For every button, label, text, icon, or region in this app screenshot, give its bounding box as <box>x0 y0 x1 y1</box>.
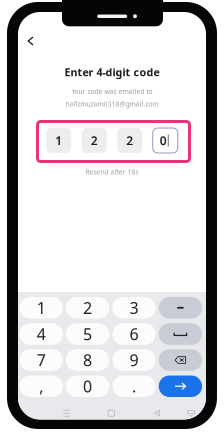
button[interactable]: Back <box>17 28 43 54</box>
button[interactable]: 6 <box>112 323 156 345</box>
button[interactable]: Space <box>159 323 202 345</box>
staticText: 5 <box>83 323 92 345</box>
button[interactable]: Hide keyboard <box>183 406 199 420</box>
button[interactable]: 2 <box>66 297 109 318</box>
button[interactable]: , <box>19 375 63 397</box>
button[interactable]: 7 <box>19 349 63 371</box>
staticText: 3 <box>129 297 138 318</box>
staticText: 4 <box>37 323 46 345</box>
staticText: Enter 4-digit code <box>64 65 159 79</box>
button[interactable]: Dash <box>159 297 202 318</box>
staticText: 7 <box>37 349 46 371</box>
staticText: 2 <box>126 132 133 148</box>
staticText: Your code was emailed to <box>71 87 152 96</box>
button[interactable]: 2 <box>82 128 107 153</box>
button[interactable]: 8 <box>66 349 109 371</box>
staticText: 1 <box>37 297 46 318</box>
button[interactable]: Enter <box>159 375 202 397</box>
staticText: 0 <box>160 132 167 148</box>
staticText: 9 <box>129 349 138 371</box>
button[interactable]: 1 <box>46 128 71 153</box>
staticText: 6 <box>129 323 138 345</box>
button[interactable]: . <box>112 375 156 397</box>
button[interactable]: 5 <box>66 323 109 345</box>
button[interactable]: 0 <box>153 128 178 153</box>
button[interactable]: 0 <box>66 375 109 397</box>
button[interactable]: 3 <box>112 297 156 318</box>
staticText: Resend after 18s <box>85 168 138 176</box>
button[interactable]: 2 <box>117 128 142 153</box>
staticText: 0 <box>83 376 92 397</box>
button[interactable]: Recent apps <box>58 406 74 420</box>
button[interactable]: Backspace <box>159 349 202 371</box>
staticText: hafizmuzamil318@gmail.com <box>65 100 158 108</box>
staticText: , <box>39 376 43 397</box>
button[interactable]: 1 <box>19 297 63 318</box>
button[interactable]: Home <box>103 406 119 420</box>
staticText: 2 <box>83 297 92 318</box>
staticText: 2 <box>91 132 98 148</box>
button[interactable]: 4 <box>19 323 63 345</box>
staticText: 8 <box>83 349 92 371</box>
staticText: 1 <box>55 132 62 148</box>
staticText: . <box>132 376 136 397</box>
button[interactable]: Back <box>149 406 165 420</box>
button[interactable]: 9 <box>112 349 156 371</box>
